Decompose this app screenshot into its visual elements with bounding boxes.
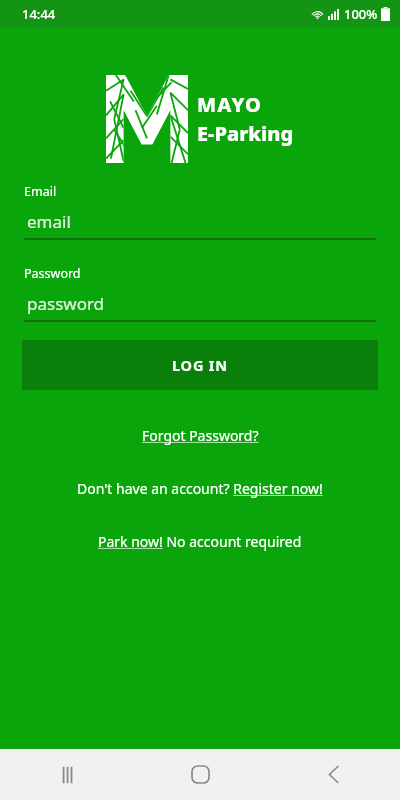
button[interactable]: password <box>24 292 376 322</box>
staticText: Password <box>24 265 81 282</box>
staticText: password <box>27 292 105 315</box>
staticText: Park now! No account required <box>98 532 302 551</box>
staticText: email <box>27 210 71 233</box>
staticText: 100% <box>344 5 378 23</box>
button[interactable]: Park now! No account required <box>90 528 310 555</box>
staticText: Forgot Password? <box>142 426 259 445</box>
button[interactable]: LOG IN <box>22 340 378 390</box>
staticText: LOG IN <box>172 355 228 375</box>
button[interactable]: Forgot Password? <box>134 422 267 449</box>
button[interactable]: Home <box>134 749 267 800</box>
staticText: E-Parking <box>197 120 294 147</box>
staticText: Email <box>24 183 57 200</box>
staticText: Don't have an account? Register now! <box>77 479 323 498</box>
staticText: 14:44 <box>22 5 56 23</box>
button[interactable]: Back <box>267 749 400 800</box>
button[interactable]: email <box>24 210 376 240</box>
staticText: MAYO <box>197 91 263 118</box>
button[interactable]: Don't have an account? Register now! <box>69 475 331 502</box>
button[interactable]: Recent apps <box>0 749 134 800</box>
